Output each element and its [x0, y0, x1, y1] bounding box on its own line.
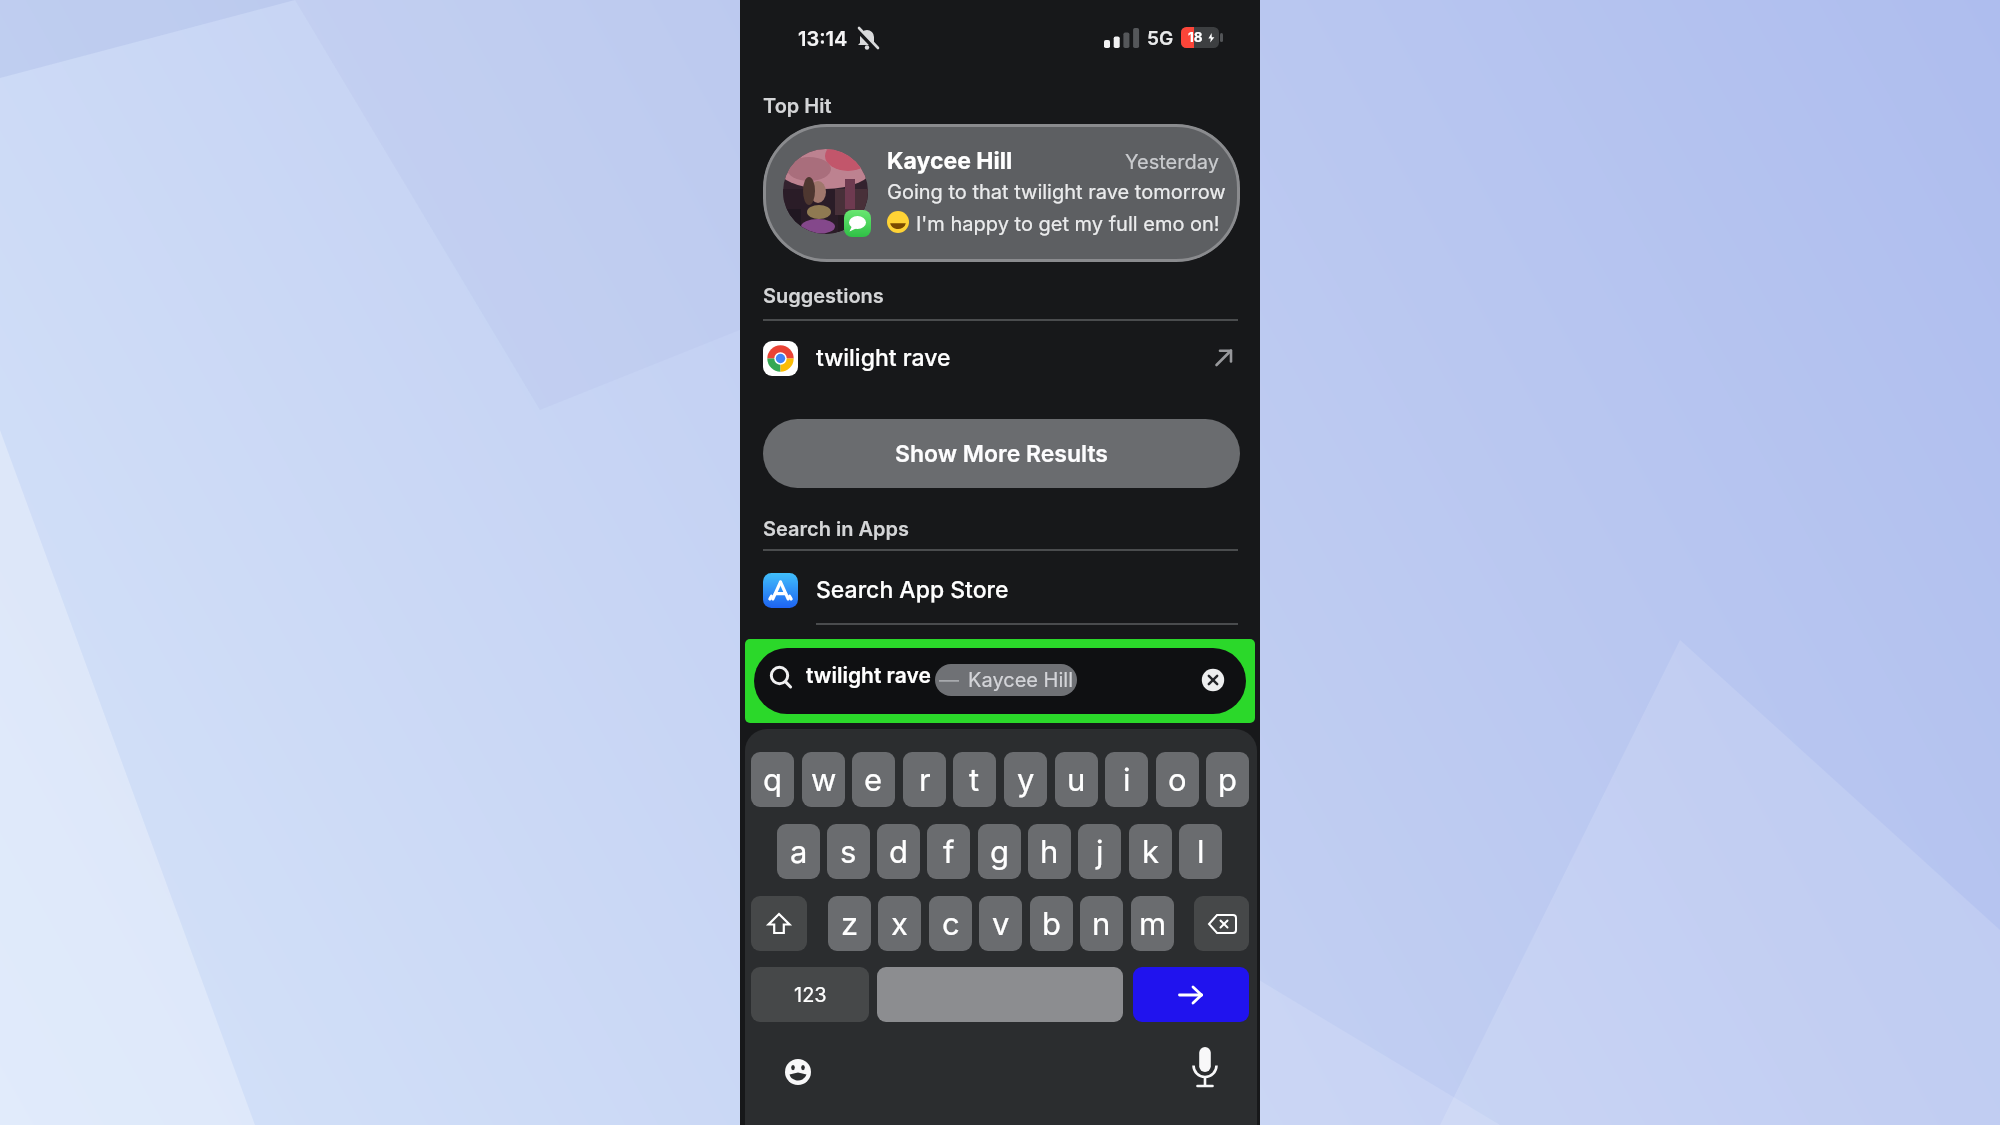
button[interactable]: x — [878, 896, 921, 951]
button[interactable] — [1191, 1046, 1219, 1096]
button[interactable]: j — [1078, 824, 1121, 879]
staticText: l — [1197, 833, 1205, 871]
button[interactable]: q — [751, 752, 794, 807]
staticText: Yesterday — [1125, 150, 1219, 174]
staticText: p — [1218, 761, 1237, 799]
staticText: v — [992, 905, 1010, 943]
button[interactable]: b — [1030, 896, 1073, 951]
button[interactable]: i — [1105, 752, 1148, 807]
staticText: f — [943, 833, 955, 871]
button[interactable]: Show More Results — [763, 419, 1240, 488]
button[interactable]: l — [1179, 824, 1222, 879]
button[interactable]: f — [927, 824, 970, 879]
button[interactable]: — — [935, 664, 1077, 696]
button[interactable]: d — [877, 824, 920, 879]
staticText: twilight rave — [816, 344, 951, 372]
button[interactable]: Search App Store — [763, 568, 1238, 612]
staticText: h — [1040, 833, 1059, 871]
staticText: Going to that twilight rave tomorrow — [887, 180, 1226, 204]
button[interactable] — [751, 896, 807, 951]
staticText: s — [840, 833, 857, 871]
staticText: 18 — [1188, 29, 1203, 45]
staticText: Kaycee Hill — [968, 668, 1073, 692]
staticText: 123 — [794, 983, 827, 1007]
button[interactable]: u — [1055, 752, 1098, 807]
staticText: Search App Store — [816, 576, 1009, 604]
staticText: I'm happy to get my full emo on! — [916, 212, 1220, 236]
staticText: Top Hit — [763, 94, 832, 118]
button[interactable]: v — [979, 896, 1022, 951]
staticText: w — [811, 761, 837, 799]
staticText: k — [1142, 833, 1160, 871]
staticText: — — [939, 668, 959, 692]
staticText: u — [1067, 761, 1086, 799]
button[interactable]: r — [903, 752, 946, 807]
button[interactable] — [1133, 967, 1249, 1022]
staticText: q — [763, 761, 782, 799]
staticText: i — [1123, 761, 1131, 799]
button[interactable]: w — [802, 752, 845, 807]
staticText: x — [891, 905, 908, 943]
button[interactable]: Kaycee Hill — [763, 124, 1240, 262]
staticText: 13:14 — [798, 27, 848, 51]
staticText: 5G — [1147, 27, 1174, 50]
staticText: Kaycee Hill — [887, 147, 1013, 175]
staticText: y — [1017, 761, 1035, 799]
staticText: d — [889, 833, 908, 871]
button[interactable]: k — [1129, 824, 1172, 879]
button[interactable]: s — [827, 824, 870, 879]
staticText: c — [942, 905, 960, 943]
staticText: b — [1042, 905, 1061, 943]
button[interactable]: g — [978, 824, 1021, 879]
button[interactable]: e — [852, 752, 895, 807]
button[interactable] — [1194, 896, 1249, 951]
staticText: t — [969, 761, 980, 799]
staticText: Suggestions — [763, 284, 884, 308]
staticText: r — [919, 761, 931, 799]
staticText: Show More Results — [895, 440, 1108, 468]
staticText: e — [864, 761, 883, 799]
button[interactable]: h — [1028, 824, 1071, 879]
button[interactable] — [754, 648, 1246, 714]
button[interactable]: t — [953, 752, 996, 807]
button[interactable]: y — [1004, 752, 1047, 807]
button[interactable]: p — [1206, 752, 1249, 807]
button[interactable] — [877, 967, 1123, 1022]
staticText: o — [1168, 761, 1187, 799]
staticText: z — [841, 905, 859, 943]
staticText: a — [790, 833, 808, 871]
staticText: j — [1096, 833, 1104, 871]
button[interactable]: twilight rave — [763, 336, 1238, 380]
staticText: g — [990, 833, 1010, 871]
button[interactable]: c — [929, 896, 972, 951]
button[interactable]: a — [777, 824, 820, 879]
button[interactable]: z — [828, 896, 871, 951]
button[interactable]: 123 — [751, 967, 869, 1022]
button[interactable]: o — [1156, 752, 1199, 807]
staticText: twilight rave — [806, 663, 931, 688]
staticText: Search in Apps — [763, 517, 909, 541]
staticText: n — [1092, 905, 1111, 943]
staticText: m — [1139, 905, 1167, 943]
button[interactable] — [1201, 668, 1225, 692]
button[interactable]: m — [1131, 896, 1174, 951]
button[interactable]: n — [1080, 896, 1123, 951]
button[interactable] — [784, 1058, 812, 1086]
